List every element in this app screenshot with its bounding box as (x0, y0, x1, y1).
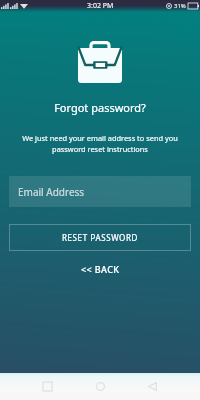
button[interactable]: Back (139, 373, 166, 400)
staticText: << BACK (81, 263, 120, 275)
button[interactable]: Email Address (9, 176, 191, 207)
staticText: Email Address (18, 185, 85, 199)
button[interactable]: Recents (34, 373, 61, 400)
staticText: 31% (174, 2, 186, 10)
staticText: 3:02 PM (87, 1, 114, 11)
button[interactable]: << BACK (67, 259, 134, 279)
button[interactable]: Home (87, 373, 114, 400)
staticText: We just need your email address to send … (0, 133, 200, 154)
staticText: RESET PASSWORD (62, 232, 138, 243)
button[interactable]: RESET PASSWORD (9, 224, 191, 251)
staticText: Forgot password? (0, 100, 200, 115)
